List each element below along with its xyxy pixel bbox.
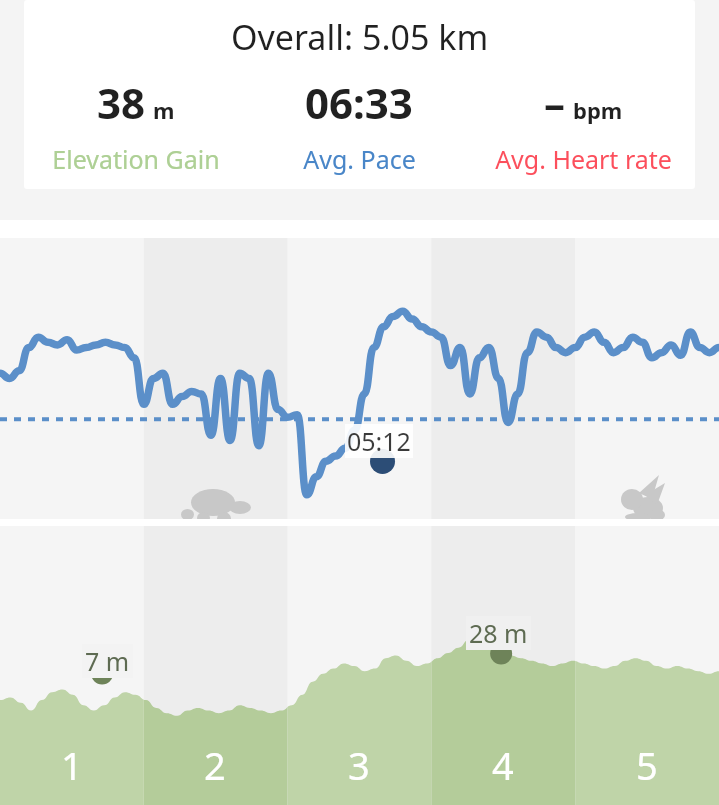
button[interactable]: Overall: 5.05 km [24,0,695,189]
button[interactable]: – [471,74,695,176]
staticText: 05:12 [347,424,411,458]
staticText: 28 m [469,616,528,650]
staticText: 2 [204,739,226,791]
staticText: 3 [348,739,370,791]
staticText: Overall: 5.05 km [231,14,489,60]
staticText: 5 [636,739,658,791]
staticText: 7 m [85,644,130,678]
staticText: 4 [492,739,514,791]
staticText: 1 [61,739,83,791]
button[interactable]: 38 [24,74,247,176]
staticText: m [153,95,175,125]
staticText: Avg. Pace [303,142,416,176]
button[interactable]: Pace chart [0,238,719,519]
staticText: 38 [97,74,146,131]
other: Slowest and fastest split [0,238,719,519]
button[interactable]: Elevation chart [0,526,719,805]
button[interactable]: 06:33 [247,74,471,176]
staticText: Elevation Gain [52,142,220,176]
staticText: Avg. Heart rate [495,142,672,176]
staticText: – [544,74,566,131]
staticText: 06:33 [305,74,413,131]
staticText: bpm [573,95,623,125]
